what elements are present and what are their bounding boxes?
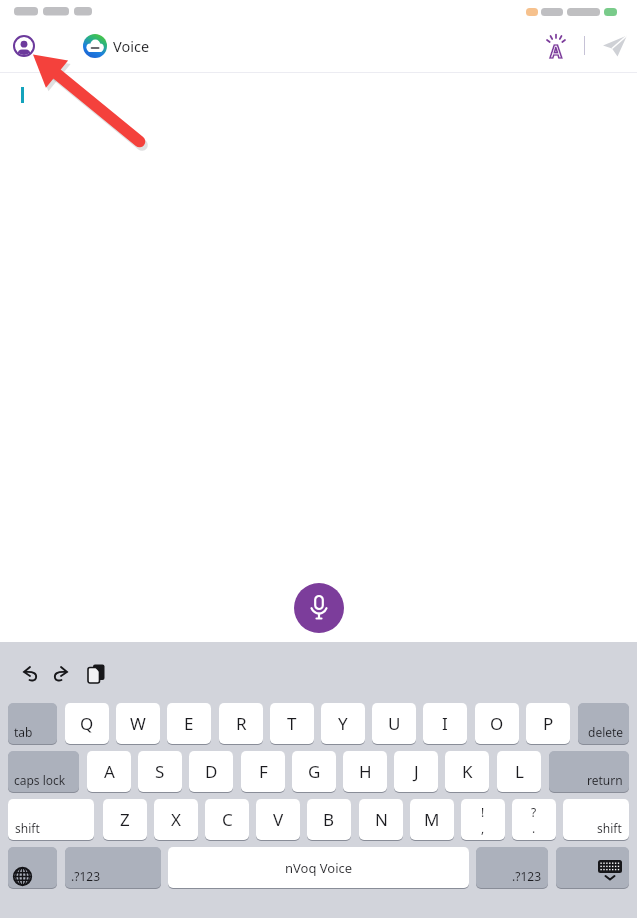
button[interactable] bbox=[600, 31, 630, 61]
button[interactable]: shift bbox=[8, 799, 94, 840]
button[interactable]: N bbox=[359, 799, 403, 840]
staticText: ! bbox=[481, 804, 485, 820]
staticText: O bbox=[490, 712, 504, 735]
staticText: delete bbox=[588, 724, 624, 740]
button[interactable]: T bbox=[270, 703, 314, 744]
staticText: V bbox=[273, 808, 284, 831]
staticText: Voice bbox=[113, 36, 150, 56]
button[interactable]: ! bbox=[461, 799, 505, 840]
button[interactable]: nVoq Voice bbox=[168, 847, 469, 888]
button[interactable]: tab bbox=[8, 703, 57, 744]
staticText: Q bbox=[80, 712, 94, 735]
button[interactable]: X bbox=[154, 799, 198, 840]
staticText: W bbox=[130, 712, 146, 735]
button[interactable]: shift bbox=[563, 799, 629, 840]
staticText: ? bbox=[531, 804, 537, 820]
button[interactable]: P bbox=[526, 703, 570, 744]
button[interactable]: .?123 bbox=[65, 847, 161, 888]
staticText: Z bbox=[120, 808, 130, 831]
button[interactable]: W bbox=[116, 703, 160, 744]
staticText: .?123 bbox=[512, 868, 542, 884]
staticText: shift bbox=[597, 820, 622, 836]
button[interactable]: R bbox=[219, 703, 263, 744]
staticText: X bbox=[171, 808, 181, 831]
button[interactable]: D bbox=[189, 751, 233, 792]
button[interactable]: F bbox=[241, 751, 285, 792]
button[interactable] bbox=[556, 847, 629, 888]
staticText: F bbox=[259, 760, 268, 783]
button[interactable]: V bbox=[256, 799, 300, 840]
staticText: S bbox=[155, 760, 165, 783]
button[interactable]: return bbox=[549, 751, 629, 792]
staticText: B bbox=[323, 808, 335, 831]
staticText: N bbox=[375, 808, 388, 831]
staticText: E bbox=[184, 712, 194, 735]
staticText: M bbox=[424, 808, 440, 831]
staticText: Y bbox=[338, 712, 348, 735]
button[interactable]: L bbox=[497, 751, 541, 792]
button[interactable]: C bbox=[205, 799, 249, 840]
button[interactable]: H bbox=[343, 751, 387, 792]
staticText: G bbox=[308, 760, 321, 783]
button[interactable]: J bbox=[394, 751, 438, 792]
staticText: tab bbox=[14, 724, 33, 740]
button[interactable]: delete bbox=[578, 703, 629, 744]
staticText: A bbox=[550, 40, 562, 63]
button[interactable]: ? bbox=[512, 799, 556, 840]
staticText: C bbox=[222, 808, 233, 831]
staticText: A bbox=[104, 760, 115, 783]
button[interactable]: A bbox=[543, 33, 569, 59]
button[interactable]: K bbox=[445, 751, 489, 792]
staticText: . bbox=[532, 820, 536, 836]
staticText: K bbox=[462, 760, 473, 783]
button[interactable]: I bbox=[423, 703, 467, 744]
button[interactable]: M bbox=[410, 799, 454, 840]
button[interactable]: A bbox=[87, 751, 131, 792]
staticText: L bbox=[515, 760, 524, 783]
staticText: R bbox=[236, 712, 247, 735]
staticText: J bbox=[414, 760, 419, 783]
button[interactable]: O bbox=[475, 703, 519, 744]
staticText: caps lock bbox=[14, 772, 66, 788]
staticText: I bbox=[442, 712, 448, 735]
button[interactable]: E bbox=[167, 703, 211, 744]
staticText: D bbox=[205, 760, 218, 783]
button[interactable] bbox=[294, 583, 344, 633]
staticText: .?123 bbox=[71, 868, 101, 884]
button[interactable]: Y bbox=[321, 703, 365, 744]
button[interactable]: B bbox=[307, 799, 351, 840]
staticText: U bbox=[388, 712, 401, 735]
button[interactable]: G bbox=[292, 751, 336, 792]
staticText: P bbox=[543, 712, 554, 735]
button[interactable] bbox=[8, 847, 57, 888]
button[interactable]: caps lock bbox=[8, 751, 79, 792]
staticText: , bbox=[481, 820, 485, 836]
button[interactable]: Z bbox=[103, 799, 147, 840]
staticText: T bbox=[287, 712, 297, 735]
staticText: shift bbox=[15, 820, 40, 836]
button[interactable]: Q bbox=[65, 703, 109, 744]
button[interactable] bbox=[11, 33, 37, 59]
button[interactable]: U bbox=[372, 703, 416, 744]
button[interactable]: S bbox=[138, 751, 182, 792]
staticText: H bbox=[359, 760, 372, 783]
staticText: return bbox=[587, 772, 623, 788]
staticText: nVoq Voice bbox=[285, 859, 353, 877]
button[interactable]: .?123 bbox=[476, 847, 548, 888]
